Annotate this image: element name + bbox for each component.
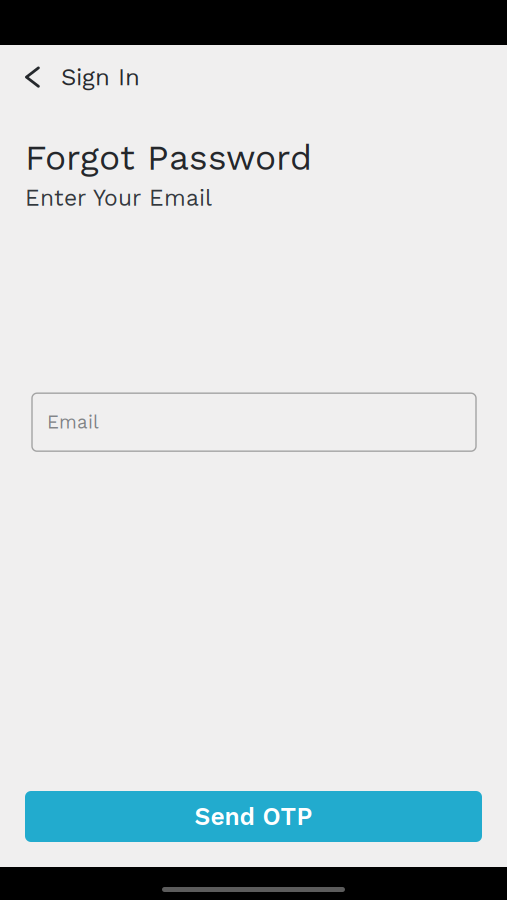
staticText: Forgot Password	[25, 137, 312, 178]
button[interactable]: Sign In	[0, 60, 156, 94]
staticText: Send OTP	[194, 802, 312, 831]
staticText: Enter Your Email	[25, 184, 212, 211]
staticText: Email	[47, 411, 99, 433]
button[interactable]: Send OTP	[25, 791, 482, 842]
staticText: Sign In	[61, 63, 140, 91]
